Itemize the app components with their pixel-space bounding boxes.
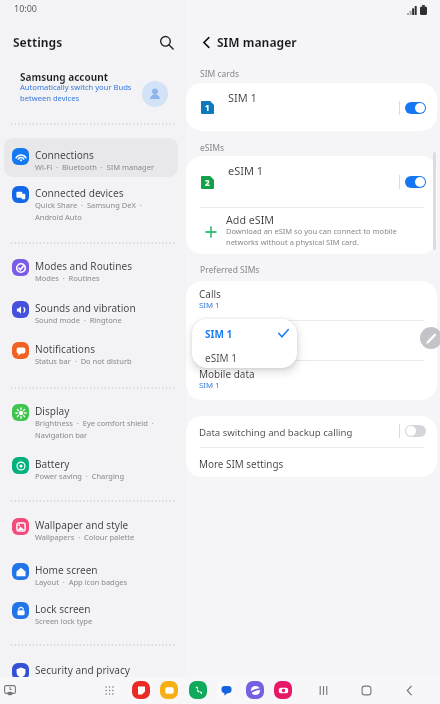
button[interactable]: Security and privacy [4,653,178,692]
staticText: Wallpapers · Colour palette [35,532,178,542]
button[interactable]: More SIM settings [186,447,437,477]
staticText: SIM 1 [228,90,257,105]
staticText: Mobile data [199,367,255,381]
button[interactable]: SIM 1 [192,319,297,344]
staticText: SIM cards [200,68,239,80]
staticText: Modes and Routines [35,259,132,273]
button[interactable]: Search [155,31,178,54]
button[interactable]: Lock screen [4,592,178,631]
staticText: Calls [199,287,221,301]
staticText: Add eSIM [226,213,274,228]
button[interactable]: BROWSER [246,681,264,699]
staticText: Download an eSIM so you can connect to m… [226,226,397,247]
staticText: Display [35,404,70,418]
button[interactable]: Display [4,394,178,444]
staticText: Wi-Fi · Bluetooth · SIM manager [35,162,178,172]
button[interactable]: FOLDER [160,681,178,699]
button[interactable]: Calls [186,281,437,321]
staticText: Data switching and backup calling [199,426,353,439]
staticText: 2 [205,177,210,188]
button[interactable]: FILES [132,681,150,699]
staticText: Brightness · Eye comfort shield · Naviga… [35,418,178,441]
staticText: Messages [199,327,246,341]
button[interactable]: eSIM 1 [192,344,297,368]
staticText: Screen lock type [35,616,178,626]
staticText: Automatically switch your Buds between d… [20,82,132,103]
button[interactable]: Edit [420,327,440,349]
staticText: eSIM 1 [205,351,237,365]
button[interactable]: Notifications [4,332,178,371]
staticText: Sound mode · Ringtone [35,315,178,325]
staticText: Security and privacy [35,663,131,677]
staticText: Wallpaper and style [35,518,129,532]
staticText: Power saving · Charging [35,471,178,481]
staticText: Layout · App icon badges [35,577,178,587]
button[interactable]: HOME [356,680,376,700]
button[interactable]: Connections [4,138,178,177]
staticText: 10:00 [14,2,38,14]
staticText: Connections [35,148,94,162]
staticText: Home screen [35,563,98,577]
staticText: Lock screen [35,602,91,616]
staticText: SIM 1 [199,300,220,311]
button[interactable]: Back [194,30,218,54]
button[interactable]: Data switching and backup calling [186,416,437,447]
button[interactable]: CAMERA [274,681,292,699]
button[interactable]: Home screen [4,553,178,592]
button[interactable]: Connected devices [4,176,178,226]
staticText: 1 [205,102,210,113]
staticText: SIM manager [217,34,297,50]
button[interactable]: RECENT [313,680,333,700]
staticText: eSIM 1 [228,163,264,178]
button[interactable]: Modes and Routines [4,249,178,288]
staticText: Quick Share · Samsung DeX · Android Auto [35,200,178,223]
button[interactable]: PHONE [189,681,207,699]
button[interactable]: All apps [100,681,118,699]
button[interactable]: Mobile data [186,361,437,400]
staticText: eSIMs [200,142,225,154]
button[interactable]: Toggle [405,425,426,437]
staticText: Connected devices [35,186,124,200]
button[interactable]: Screenshot [1,681,19,699]
button[interactable]: MSG [217,681,235,699]
staticText: Notifications [35,342,96,356]
staticText: SIM 1 [199,380,220,391]
staticText: Battery [35,457,70,471]
button[interactable]: Messages [186,321,437,361]
button[interactable]: 1 [186,83,437,124]
staticText: Sounds and vibration [35,301,136,315]
button[interactable]: Toggle [405,176,426,188]
staticText: More SIM settings [199,457,284,470]
staticText: Settings [13,34,63,50]
staticText: Modes · Routines [35,273,178,283]
button[interactable]: Sounds and vibration [4,291,178,330]
button[interactable]: Toggle [405,102,426,114]
button[interactable]: Wallpaper and style [4,508,178,547]
staticText: SIM 1 [205,327,233,341]
button[interactable]: Add eSIM [186,207,437,254]
staticText: Status bar · Do not disturb [35,356,178,366]
button[interactable]: 2 [186,156,437,198]
staticText: Samsung account [20,70,109,84]
button[interactable]: Battery [4,447,178,486]
button[interactable]: BACK [399,680,419,700]
button[interactable]: Samsung account [4,64,178,112]
staticText: Preferred SIMs [200,264,260,276]
